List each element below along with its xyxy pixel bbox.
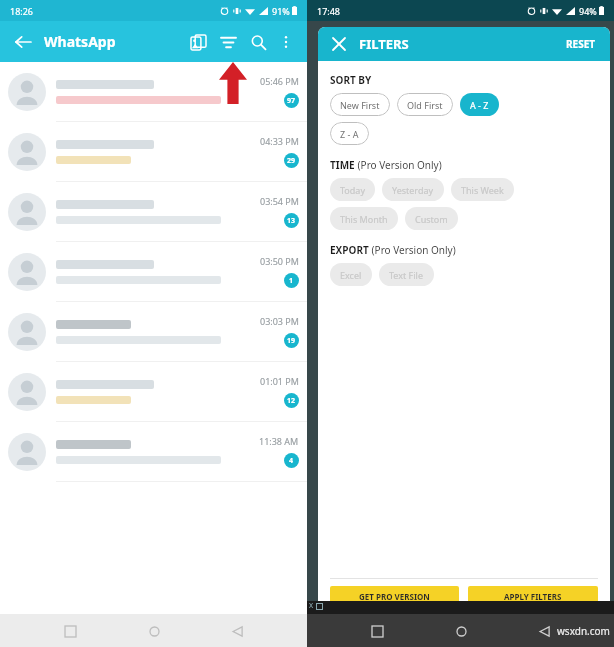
staticText: Z - A [340,128,359,140]
staticText: 17:48 [317,5,341,17]
staticText: 05:46 PM [260,75,299,87]
button[interactable]: Recents [364,618,390,644]
staticText: Excel [340,269,362,281]
button[interactable]: This Month [330,207,398,230]
button[interactable]: A - Z [460,93,499,116]
button[interactable]: Back [224,618,250,644]
staticText: FILTERS [359,35,409,53]
button[interactable]: Close [328,33,350,55]
button[interactable]: 03:50 PM [0,242,307,301]
staticText: 03:54 PM [260,195,299,207]
staticText: Custom [415,213,448,225]
staticText: Text File [389,269,424,281]
staticText: This Month [340,213,388,225]
staticText: 4 [289,456,294,466]
button[interactable]: Back [8,27,38,57]
staticText: APPLY FILTERS [504,591,562,602]
staticText: 13 [287,216,296,226]
staticText: 03:50 PM [260,255,299,267]
button[interactable]: Filter [213,27,243,57]
button[interactable]: Home [448,618,474,644]
staticText: 29 [287,156,296,166]
button[interactable]: New First [330,93,390,116]
button[interactable]: 05:46 PM [0,62,307,121]
button[interactable]: Z - A [330,122,369,145]
button[interactable]: Home [141,618,167,644]
staticText: WhatsApp [44,32,116,51]
staticText: 97 [287,96,296,106]
staticText: 11:38 AM [259,435,299,447]
button[interactable]: 11:38 AM [0,422,307,481]
button[interactable]: Today [330,178,375,201]
staticText: X [309,601,314,611]
staticText: 01:01 PM [260,375,299,387]
staticText: 91% [272,5,290,17]
button[interactable]: 04:33 PM [0,122,307,181]
staticText: (Pro Version Only) [355,158,442,172]
staticText: 1 [289,276,294,286]
staticText: 18:26 [10,5,34,17]
staticText: TIME [330,158,355,172]
staticText: RESET [566,37,596,51]
button[interactable]: GET PRO VERSION [330,586,459,607]
button[interactable]: Back [531,618,557,644]
staticText: 03:03 PM [260,315,299,327]
staticText: SORT BY [330,73,372,87]
button[interactable]: APPLY FILTERS [468,586,598,607]
staticText: 19 [287,336,296,346]
button[interactable]: 03:54 PM [0,182,307,241]
button[interactable]: Old First [397,93,453,116]
button[interactable]: Yesterday [382,178,444,201]
staticText: This Week [461,184,504,196]
button[interactable]: 01:01 PM [0,362,307,421]
button[interactable]: Search [243,27,273,57]
staticText: Old First [407,99,443,111]
staticText: GET PRO VERSION [359,591,430,602]
button[interactable]: Recents [57,618,83,644]
button[interactable]: Excel [330,263,372,286]
button[interactable]: Text File [379,263,434,286]
staticText: EXPORT [330,243,369,257]
staticText: wsxdn.com [557,624,610,638]
button[interactable]: More options [273,29,299,55]
button[interactable]: Custom [405,207,458,230]
staticText: A - Z [470,99,489,111]
staticText: 12 [287,396,296,406]
button[interactable]: 03:03 PM [0,302,307,361]
staticText: New First [340,99,380,111]
staticText: Today [340,184,365,196]
button[interactable]: Status [183,27,213,57]
staticText: 94% [579,5,597,17]
staticText: 04:33 PM [260,135,299,147]
button[interactable]: This Week [451,178,514,201]
staticText: Yesterday [392,184,434,196]
button[interactable]: RESET [562,33,600,55]
staticText: (Pro Version Only) [369,243,456,257]
